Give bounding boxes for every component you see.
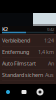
staticText: Aus bbox=[45, 71, 54, 79]
staticText: Auto Filmstart bbox=[2, 60, 36, 67]
staticText: 1,4 km bbox=[38, 48, 54, 56]
button[interactable]: Status bbox=[0, 84, 16, 100]
staticText: K2 bbox=[2, 26, 8, 33]
button[interactable]: Video bbox=[16, 84, 32, 100]
staticText: Entfernung bbox=[2, 48, 29, 56]
staticText: Verbleibend bbox=[2, 37, 30, 44]
staticText: Standard sichern bbox=[2, 71, 43, 79]
staticText: 0:42 bbox=[47, 27, 54, 32]
staticText: An bbox=[48, 60, 54, 67]
staticText: 1:24 bbox=[44, 37, 54, 44]
button[interactable]: Aufnahme bbox=[32, 84, 48, 100]
